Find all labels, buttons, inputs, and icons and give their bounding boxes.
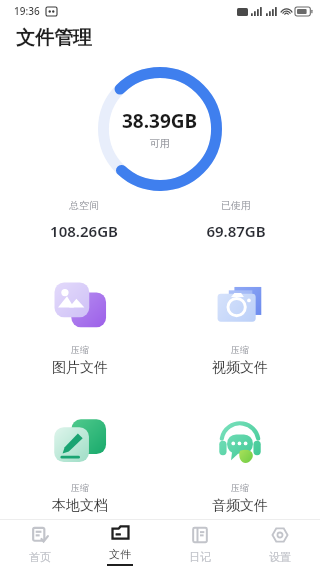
button[interactable]: 压缩 [160,271,320,381]
staticText: 设置 [269,550,291,564]
button[interactable]: 日记 [160,520,240,568]
staticText: 压缩 [71,344,89,355]
button[interactable]: 文件 [80,520,160,568]
button[interactable]: 设置 [240,520,320,568]
button[interactable]: 压缩 [0,409,160,519]
staticText: 图片文件 [52,359,108,377]
staticText: 本地文档 [52,497,108,515]
staticText: 首页 [29,550,51,564]
staticText: 音频文件 [212,497,268,515]
button[interactable]: 压缩 [0,271,160,381]
staticText: 文件 [109,547,131,561]
staticText: 文件管理 [16,26,92,50]
staticText: 日记 [189,550,211,564]
button[interactable]: 首页 [0,520,80,568]
staticText: 69.87GB [206,221,266,241]
staticText: 已使用 [221,199,251,212]
staticText: 视频文件 [212,359,268,377]
staticText: 19:36 [14,4,40,18]
staticText: 可用 [150,137,170,150]
button[interactable]: 压缩 [160,409,320,519]
staticText: 总空间 [69,199,99,212]
staticText: 38.39GB [122,108,198,134]
staticText: 108.26GB [50,221,118,241]
staticText: 压缩 [231,482,249,493]
staticText: 压缩 [71,482,89,493]
staticText: 压缩 [231,344,249,355]
